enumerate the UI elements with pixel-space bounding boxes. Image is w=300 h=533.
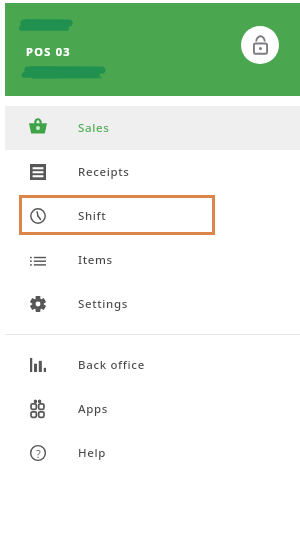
staticText: ? <box>36 446 41 461</box>
button[interactable]: Shift <box>5 194 300 238</box>
button[interactable]: ? <box>5 431 300 475</box>
staticText: POS 03 <box>26 44 71 59</box>
staticText: Receipts <box>78 164 130 180</box>
staticText: Items <box>78 252 113 268</box>
staticText: Shift <box>78 208 107 224</box>
staticText: Back office <box>78 357 145 373</box>
button[interactable]: Apps <box>5 387 300 431</box>
button[interactable]: Receipts <box>5 150 300 194</box>
button[interactable]: Settings <box>5 282 300 326</box>
staticText: Sales <box>78 120 110 136</box>
button[interactable]: Sales <box>5 106 300 150</box>
button[interactable]: Back office <box>5 343 300 387</box>
button[interactable]: Lock <box>241 26 279 64</box>
button[interactable]: Items <box>5 238 300 282</box>
staticText: Settings <box>78 296 128 312</box>
staticText: Apps <box>78 401 108 417</box>
staticText: Help <box>78 445 107 461</box>
